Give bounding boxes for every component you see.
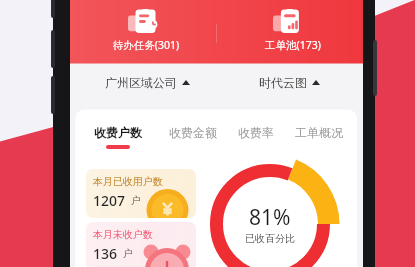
- button[interactable]: 本月已收用户数: [86, 169, 196, 218]
- staticText: 户: [131, 194, 141, 207]
- staticText: 本月已收用户数: [93, 175, 163, 188]
- staticText: 1207: [93, 191, 126, 210]
- staticText: 已收百分比: [245, 232, 295, 245]
- staticText: 户: [123, 247, 133, 260]
- staticText: 收费户数: [94, 125, 142, 140]
- staticText: 本月未收户数: [93, 228, 153, 241]
- staticText: 待办任务(301): [100, 38, 192, 52]
- staticText: 136: [93, 244, 118, 263]
- staticText: 81%: [249, 203, 291, 232]
- button[interactable]: 待办任务(301): [100, 4, 192, 56]
- staticText: 广州区域公司: [105, 75, 177, 90]
- button[interactable]: 收费率: [224, 125, 288, 140]
- button[interactable]: 收费金额: [161, 125, 225, 140]
- staticText: 收费金额: [169, 125, 217, 140]
- staticText: 工单池(173): [247, 38, 339, 52]
- button[interactable]: 工单池(173): [247, 4, 339, 56]
- button[interactable]: 工单概况: [287, 125, 351, 140]
- button[interactable]: 本月未收户数: [86, 222, 196, 267]
- staticText: 工单概况: [295, 125, 343, 140]
- button[interactable]: 收费户数: [86, 125, 150, 149]
- staticText: 收费率: [238, 125, 274, 140]
- button[interactable]: 广州区域公司: [103, 73, 192, 92]
- staticText: 时代云图: [259, 75, 307, 90]
- button[interactable]: 时代云图: [257, 73, 322, 92]
